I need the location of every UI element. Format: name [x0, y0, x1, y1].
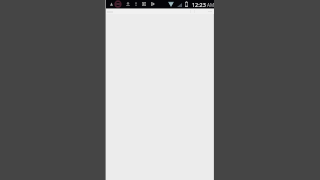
- button[interactable]: [107, 9, 147, 14]
- staticText: 12:23: [192, 1, 206, 8]
- staticText: AM: [207, 2, 215, 8]
- button[interactable]: More options: [206, 9, 214, 14]
